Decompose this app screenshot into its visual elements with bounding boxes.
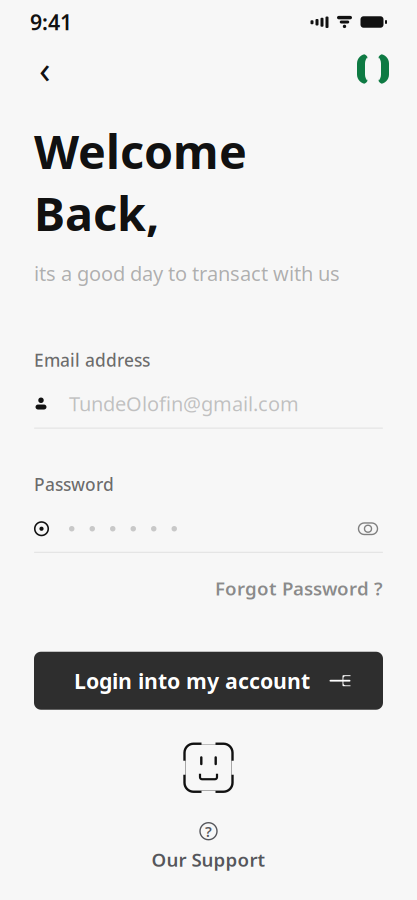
- button[interactable]: Logo: [357, 51, 389, 87]
- staticText: TundeOlofin@gmail.com: [69, 390, 299, 417]
- staticText: Email address: [34, 348, 150, 371]
- staticText: its a good day to transact with us: [34, 260, 340, 286]
- staticText: 9:41: [30, 8, 72, 36]
- button[interactable]: Sign in with Face ID: [178, 738, 238, 798]
- staticText: Login into my account: [74, 667, 310, 695]
- staticText: Our Support: [151, 847, 265, 872]
- button[interactable]: Login into my account: [34, 652, 383, 710]
- staticText: Forgot Password ?: [215, 576, 383, 601]
- staticText: Welcome Back,: [34, 120, 247, 244]
- staticText: ‹: [39, 44, 51, 94]
- button[interactable]: ?: [0, 815, 417, 878]
- button[interactable]: Show password: [353, 517, 383, 541]
- button[interactable]: Forgot Password ?: [215, 569, 383, 608]
- button[interactable]: Back: [28, 51, 62, 87]
- staticText: Password: [34, 473, 114, 496]
- staticText: ?: [205, 821, 212, 841]
